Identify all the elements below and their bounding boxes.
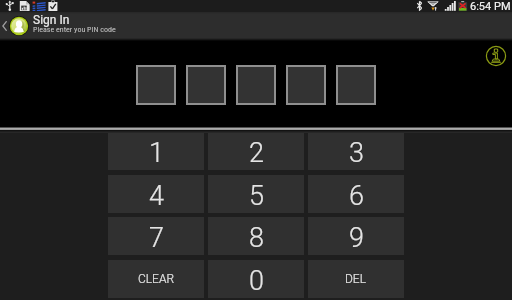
- staticText: CLEAR: [138, 272, 175, 286]
- button[interactable]: 3: [308, 132, 404, 170]
- button[interactable]: DEL: [308, 260, 404, 298]
- staticText: 7: [149, 222, 164, 254]
- staticText: 1: [149, 137, 164, 169]
- button[interactable]: 7: [108, 217, 204, 255]
- staticText: 3: [349, 137, 364, 169]
- button[interactable]: CLEAR: [108, 260, 204, 298]
- staticText: 9: [349, 222, 364, 254]
- staticText: 6: [349, 180, 364, 212]
- button[interactable]: 9: [308, 217, 404, 255]
- button[interactable]: 1: [108, 132, 204, 170]
- staticText: 5: [249, 180, 264, 212]
- staticText: 8: [249, 222, 264, 254]
- button[interactable]: 4: [108, 175, 204, 213]
- button[interactable]: Back: [0, 11, 9, 41]
- staticText: DEL: [345, 272, 367, 286]
- staticText: 0: [249, 265, 264, 297]
- button[interactable]: 0: [208, 260, 304, 298]
- button[interactable]: 2: [208, 132, 304, 170]
- staticText: 4: [149, 180, 164, 212]
- staticText: 6:54 PM: [470, 0, 511, 11]
- staticText: 2: [249, 137, 264, 169]
- staticText: Please enter you PIN code: [33, 25, 116, 34]
- button[interactable]: Info: [485, 45, 507, 67]
- button[interactable]: 5: [208, 175, 304, 213]
- staticText: Sign In: [33, 13, 70, 27]
- button[interactable]: 8: [208, 217, 304, 255]
- button[interactable]: 6: [308, 175, 404, 213]
